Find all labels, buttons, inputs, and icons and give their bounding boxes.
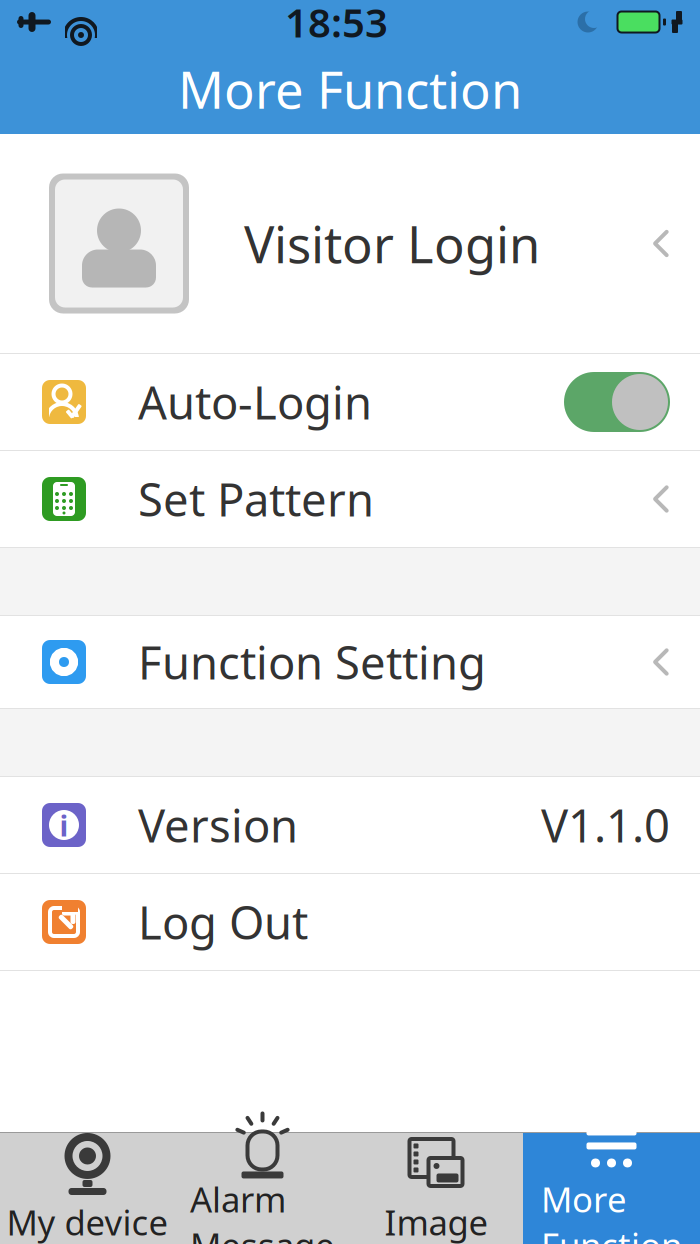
button[interactable]: Auto-Login	[0, 354, 700, 450]
staticText: Alarm Message	[190, 1176, 335, 1244]
button[interactable]: Alarm Message	[175, 1133, 350, 1244]
button[interactable]: Visitor Login	[0, 134, 700, 353]
staticText: Set Pattern	[138, 469, 374, 529]
button[interactable]: More Function	[523, 1133, 700, 1244]
button[interactable]: My device	[0, 1133, 175, 1244]
button[interactable]: Set Pattern	[0, 451, 700, 547]
staticText: More Function	[541, 1176, 682, 1244]
staticText: V1.1.0	[541, 795, 670, 855]
button[interactable]: i	[0, 777, 700, 873]
button[interactable]: Log Out	[0, 874, 700, 970]
staticText: i	[59, 805, 68, 844]
staticText: Visitor Login	[244, 210, 540, 277]
staticText: Image	[384, 1199, 488, 1244]
staticText: Version	[138, 795, 298, 855]
staticText: Function Setting	[138, 632, 486, 692]
staticText: Auto-Login	[138, 372, 372, 432]
staticText: My device	[6, 1199, 168, 1244]
button[interactable]: Function Setting	[0, 616, 700, 708]
staticText: More Function	[178, 55, 522, 123]
staticText: Log Out	[138, 892, 308, 952]
button[interactable]: Image	[350, 1133, 523, 1244]
staticText: 18:53	[285, 0, 388, 48]
